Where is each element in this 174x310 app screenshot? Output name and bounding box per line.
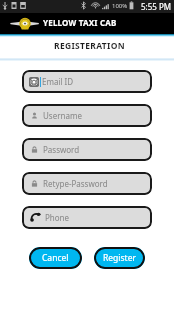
staticText: Cancel bbox=[42, 252, 69, 264]
staticText: Email ID bbox=[42, 76, 74, 87]
button[interactable]: Email ID bbox=[22, 70, 152, 93]
staticText: YELLOW TAXI CAB bbox=[43, 17, 117, 28]
staticText: Phone bbox=[45, 212, 70, 223]
button[interactable]: Phone bbox=[22, 206, 152, 229]
button[interactable]: Retype-Password bbox=[22, 172, 152, 195]
button[interactable]: Password bbox=[22, 138, 152, 161]
staticText: REGISTERATION bbox=[5, 40, 174, 52]
button[interactable]: Username bbox=[22, 104, 152, 127]
staticText: 100% bbox=[112, 2, 128, 10]
staticText: Username bbox=[43, 110, 82, 121]
button[interactable]: Register bbox=[94, 247, 145, 269]
staticText: Retype-Password bbox=[43, 178, 108, 189]
staticText: 5:55 PM bbox=[141, 1, 172, 12]
staticText: Register bbox=[103, 252, 136, 264]
staticText: Password bbox=[43, 144, 80, 155]
button[interactable]: Cancel bbox=[29, 247, 82, 269]
